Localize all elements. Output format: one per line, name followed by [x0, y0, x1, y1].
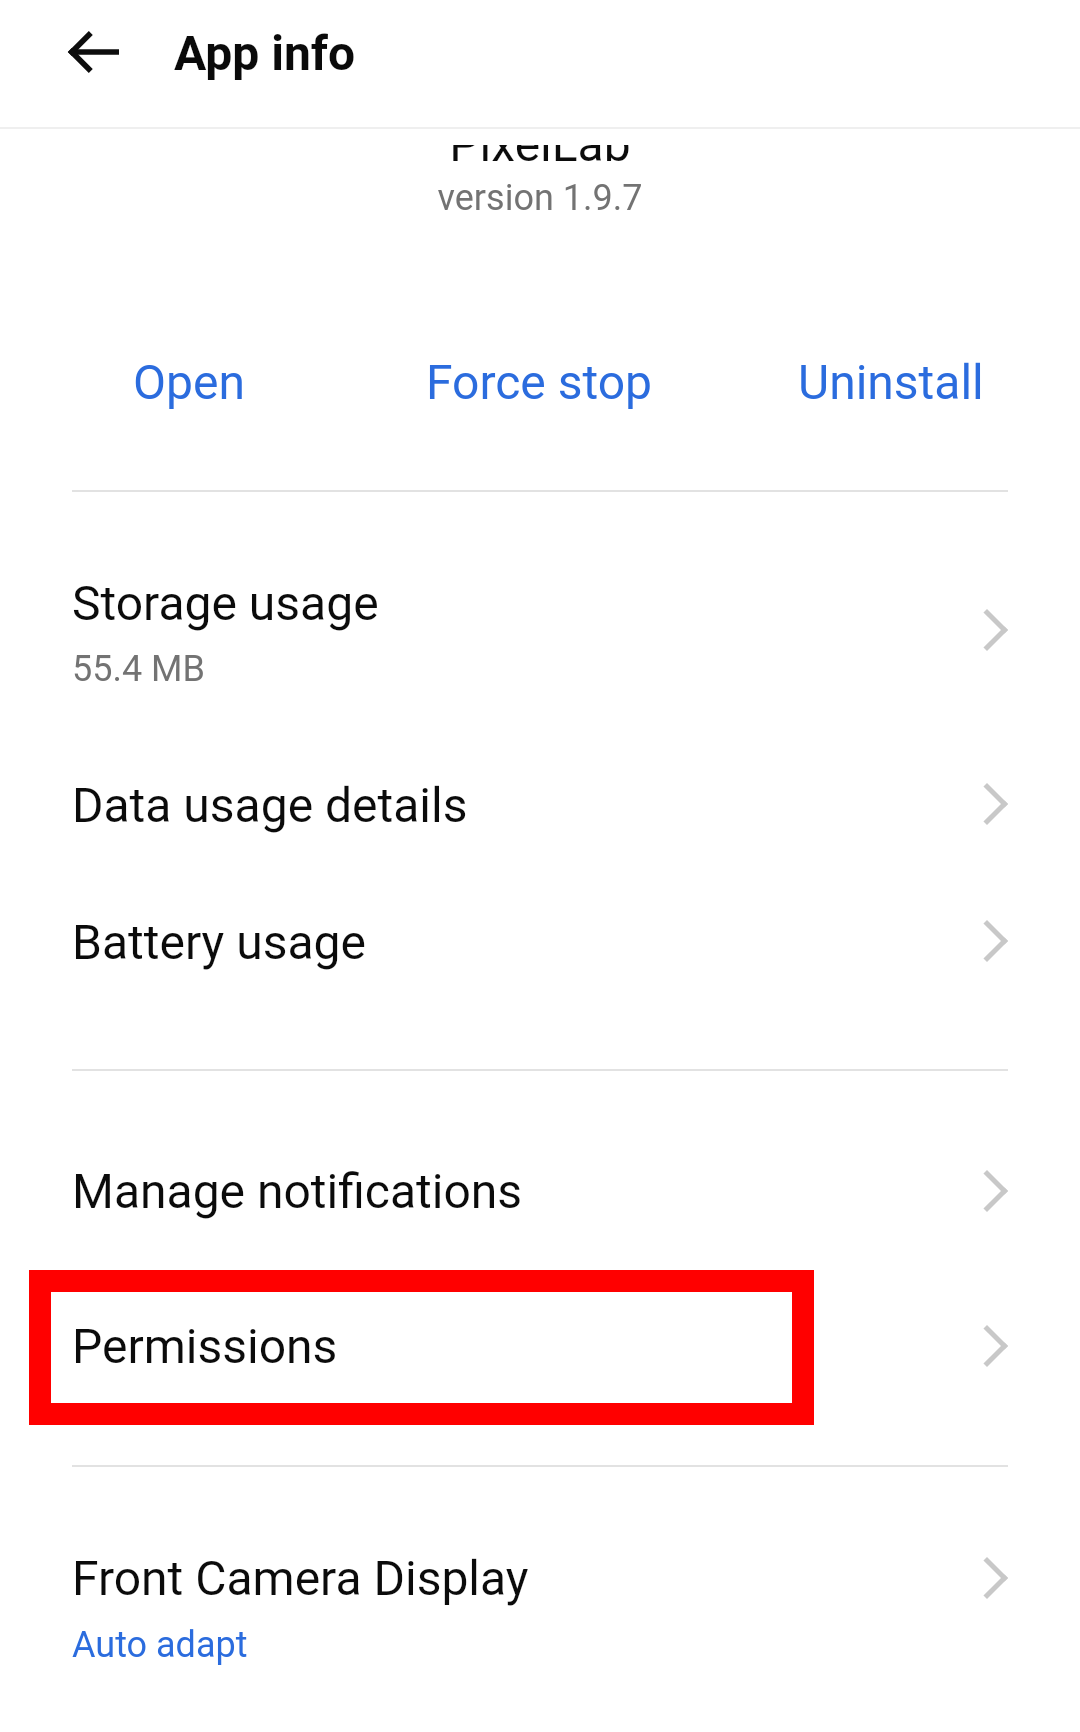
- button[interactable]: Front Camera Display: [0, 1490, 1080, 1690]
- button[interactable]: Uninstall: [715, 313, 1066, 451]
- staticText: Auto adapt: [72, 1624, 248, 1666]
- button[interactable]: Data usage details: [0, 700, 1080, 860]
- staticText: Permissions: [72, 1318, 338, 1374]
- staticText: App info: [174, 25, 356, 81]
- button[interactable]: Manage notifications: [0, 1090, 1080, 1260]
- staticText: Force stop: [426, 354, 653, 410]
- button[interactable]: Battery usage: [0, 860, 1080, 1020]
- staticText: 55.4 MB: [72, 648, 205, 690]
- staticText: Manage notifications: [72, 1163, 523, 1219]
- button[interactable]: Open: [14, 313, 364, 451]
- staticText: Open: [133, 354, 245, 410]
- staticText: Battery usage: [72, 914, 366, 970]
- button[interactable]: Permissions: [0, 1270, 1080, 1426]
- staticText: Storage usage: [72, 575, 379, 631]
- staticText: PixelLab: [0, 145, 1080, 172]
- staticText: Data usage details: [72, 777, 468, 833]
- button[interactable]: Navigate up: [46, 4, 142, 100]
- staticText: version 1.9.7: [0, 177, 1080, 219]
- staticText: Uninstall: [798, 354, 984, 410]
- button[interactable]: Force stop: [364, 313, 715, 451]
- staticText: Front Camera Display: [72, 1550, 529, 1606]
- button[interactable]: Storage usage: [0, 510, 1080, 700]
